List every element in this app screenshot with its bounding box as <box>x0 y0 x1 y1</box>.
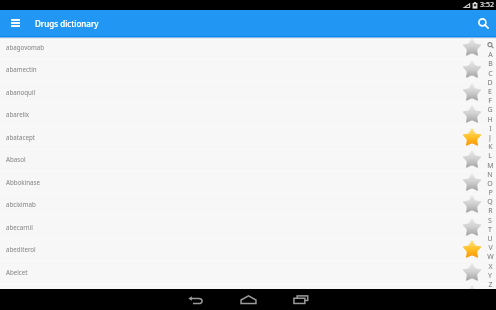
staticText: S <box>488 216 492 225</box>
button[interactable]: abatacept <box>0 126 496 148</box>
staticText: U <box>487 234 493 243</box>
staticText: abatacept <box>6 133 35 141</box>
button[interactable]: abecarnil <box>0 216 496 238</box>
button[interactable]: Open navigation drawer <box>11 10 20 36</box>
staticText: 3:52 <box>480 0 494 10</box>
staticText: Drugs dictionary <box>35 18 99 29</box>
staticText: D <box>487 78 493 87</box>
staticText: abediterol <box>6 245 36 253</box>
staticText: R <box>488 206 493 215</box>
staticText: E <box>488 87 492 96</box>
staticText: O <box>487 179 493 188</box>
button[interactable]: Alphabet index <box>484 40 496 289</box>
button[interactable]: Abelcet <box>0 261 496 283</box>
staticText: abecarnil <box>6 223 33 231</box>
staticText: A <box>488 50 493 59</box>
staticText: Abelcet <box>6 268 28 276</box>
staticText: W <box>487 252 494 261</box>
staticText: Abbokinase <box>6 178 40 186</box>
button[interactable]: Search <box>470 10 496 36</box>
button[interactable]: Abilify <box>0 283 496 305</box>
staticText: J <box>489 133 491 142</box>
staticText: abamectin <box>6 65 37 73</box>
staticText: P <box>488 188 493 197</box>
button[interactable]: Abasol <box>0 148 496 170</box>
staticText: H <box>487 115 493 124</box>
staticText: B <box>488 59 493 68</box>
staticText: I <box>489 124 492 133</box>
button[interactable]: abciximab <box>0 193 496 215</box>
staticText: Q <box>487 197 493 206</box>
staticText: Z <box>488 280 493 289</box>
button[interactable]: abanoquil <box>0 81 496 103</box>
button[interactable]: Back <box>176 289 214 310</box>
staticText: abagovomab <box>6 43 45 51</box>
button[interactable]: abagovomab <box>0 36 496 58</box>
button[interactable]: abamectin <box>0 58 496 80</box>
button[interactable]: abediterol <box>0 238 496 260</box>
staticText: M <box>487 161 494 170</box>
staticText: abciximab <box>6 200 36 208</box>
staticText: V <box>488 243 493 252</box>
staticText: Abasol <box>6 155 26 163</box>
staticText: X <box>488 262 493 271</box>
staticText: abarelix <box>6 110 30 118</box>
staticText: G <box>487 105 493 114</box>
staticText: L <box>488 151 492 160</box>
staticText: abanoquil <box>6 88 36 96</box>
button[interactable]: Recent apps <box>282 289 320 310</box>
staticText: N <box>487 170 493 179</box>
button[interactable]: abarelix <box>0 103 496 125</box>
staticText: T <box>488 225 492 234</box>
staticText: C <box>488 69 493 78</box>
button[interactable]: Abbokinase <box>0 171 496 193</box>
button[interactable]: Home <box>229 289 267 310</box>
staticText: K <box>488 142 493 151</box>
staticText: Y <box>488 271 492 280</box>
staticText: F <box>488 96 492 105</box>
